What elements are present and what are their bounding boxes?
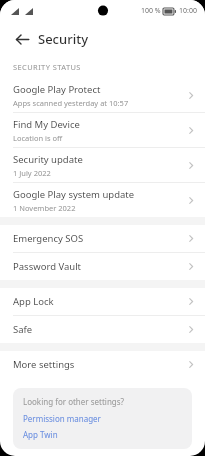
staticText: Permission manager bbox=[23, 413, 101, 424]
staticText: Emergency SOS bbox=[13, 232, 188, 245]
button[interactable]: App Lock bbox=[0, 288, 205, 315]
staticText: Location is off bbox=[13, 133, 63, 143]
button[interactable]: Password Vault bbox=[0, 253, 205, 280]
staticText: 10:00 bbox=[179, 6, 197, 16]
staticText: 1 July 2022 bbox=[13, 168, 51, 178]
button[interactable]: Back bbox=[9, 26, 35, 52]
staticText: 1 November 2022 bbox=[13, 203, 76, 213]
staticText: Find My Device bbox=[13, 118, 80, 131]
staticText: Google Play Protect bbox=[13, 83, 101, 96]
button[interactable]: Emergency SOS bbox=[0, 225, 205, 252]
staticText: 100 % bbox=[141, 6, 161, 16]
staticText: SECURITY STATUS bbox=[13, 62, 81, 72]
staticText: Password Vault bbox=[13, 260, 188, 273]
staticText: App Lock bbox=[13, 295, 188, 308]
staticText: Security bbox=[38, 30, 88, 48]
staticText: Looking for other settings? bbox=[23, 396, 125, 407]
button[interactable]: Security update bbox=[0, 148, 205, 182]
button[interactable]: Google Play system update bbox=[0, 183, 205, 217]
button[interactable]: Google Play Protect bbox=[0, 78, 205, 112]
button[interactable]: Permission manager bbox=[23, 413, 101, 424]
staticText: App Twin bbox=[23, 429, 58, 440]
button[interactable]: More settings bbox=[0, 351, 205, 378]
button[interactable]: Find My Device bbox=[0, 113, 205, 147]
button[interactable]: App Twin bbox=[23, 429, 58, 440]
button[interactable]: Safe bbox=[0, 316, 205, 343]
staticText: Google Play system update bbox=[13, 188, 135, 201]
staticText: Security update bbox=[13, 153, 83, 166]
staticText: Apps scanned yesterday at 10:57 bbox=[13, 98, 129, 108]
staticText: Safe bbox=[13, 323, 188, 336]
staticText: More settings bbox=[13, 358, 188, 371]
